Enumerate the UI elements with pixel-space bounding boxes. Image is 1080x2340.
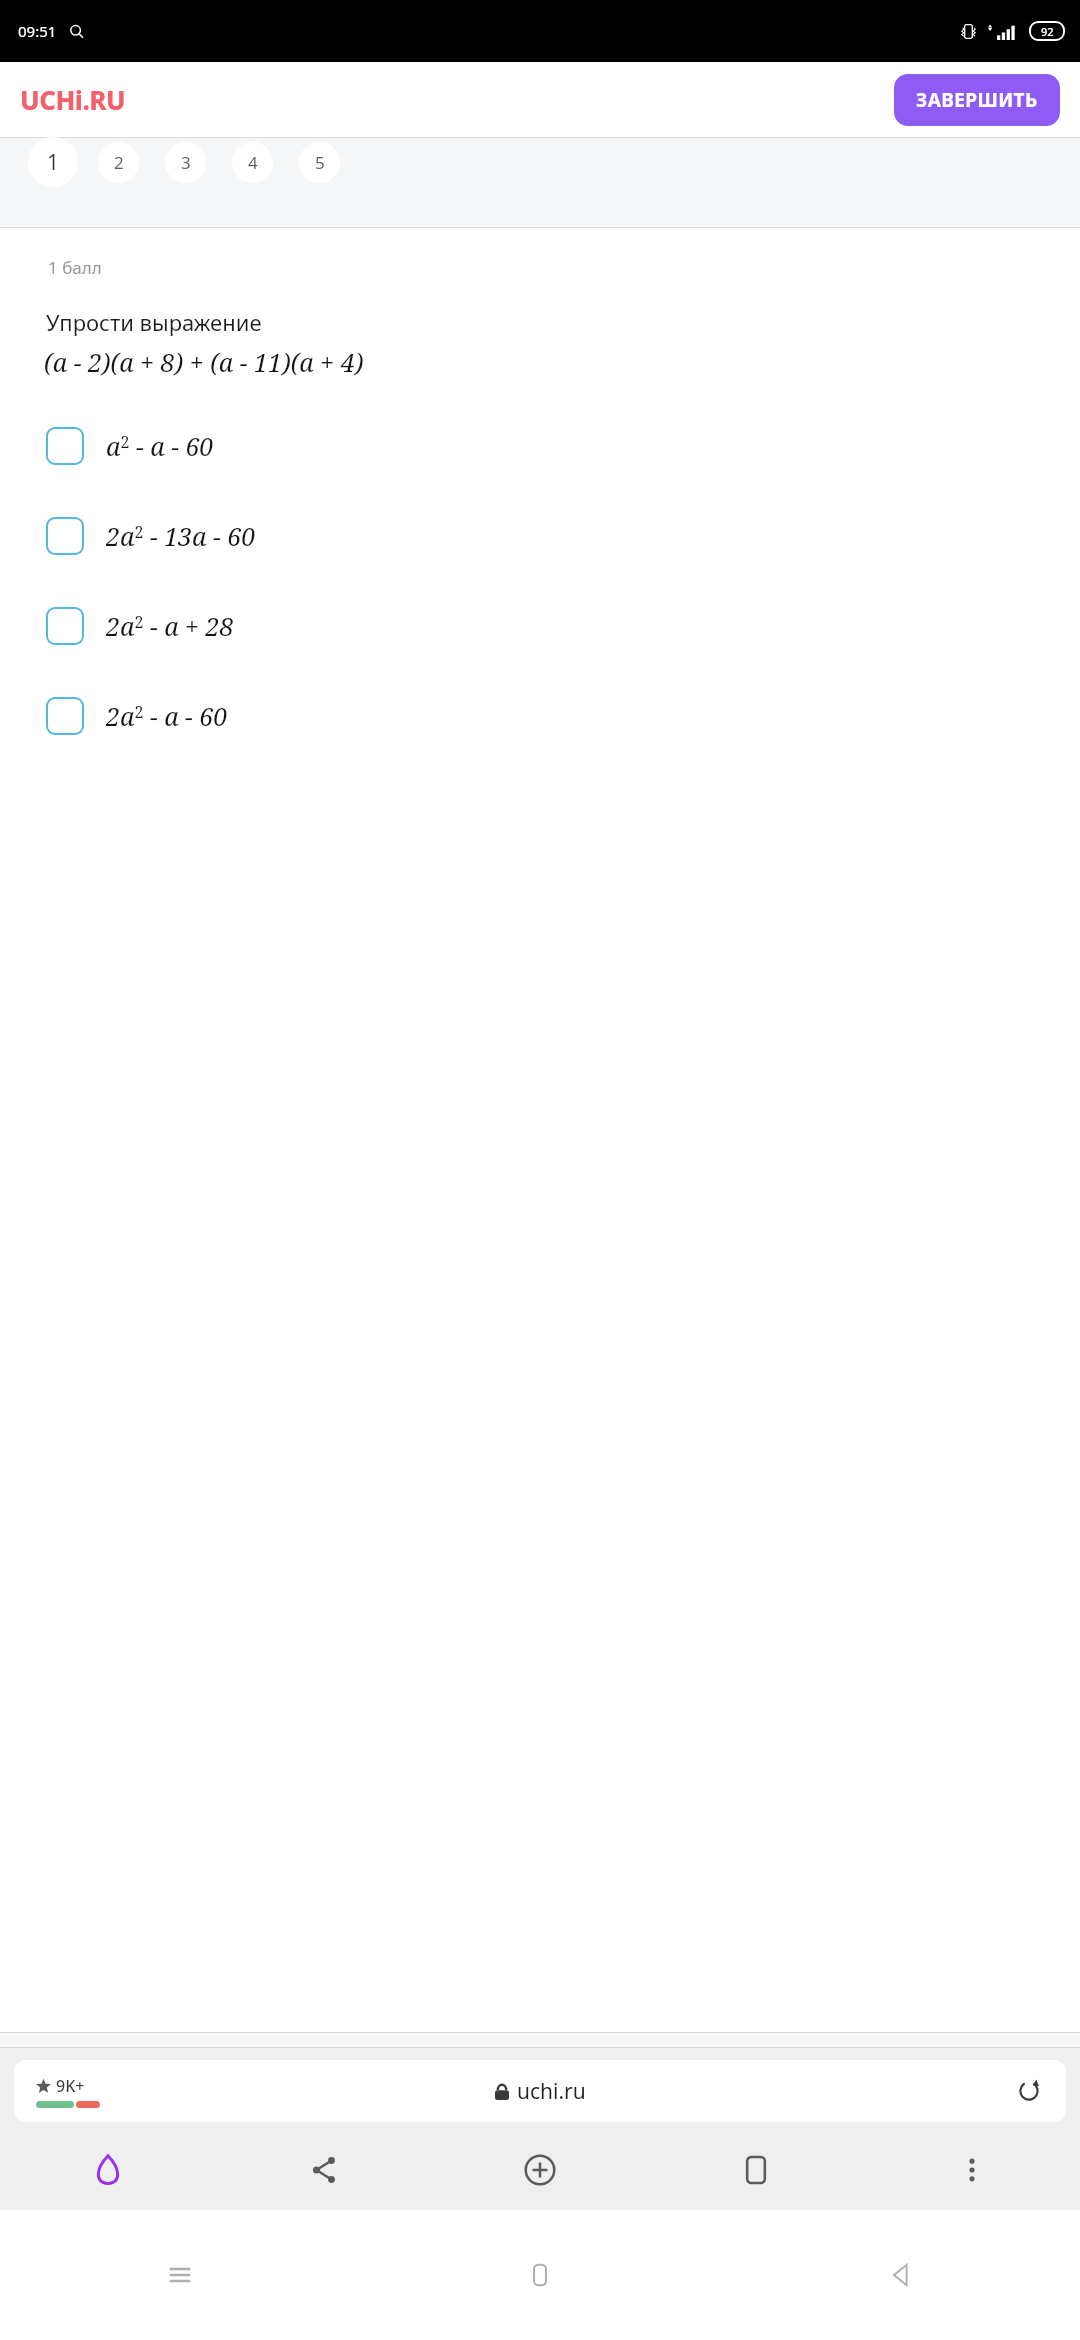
button[interactable]: Home [360, 2210, 720, 2340]
staticText: 4 [248, 151, 258, 174]
staticText: 1 [47, 148, 60, 177]
staticText: 09:51 [18, 21, 57, 41]
staticText: 92 [1041, 24, 1054, 39]
staticText: 2a2 − a − 60 [106, 699, 228, 733]
button[interactable]: 4 [232, 142, 273, 183]
button[interactable]: Back [720, 2210, 1080, 2340]
staticText: (a − 2)(a + 8) + (a − 11)(a + 4) [44, 345, 364, 379]
button[interactable]: Reload [1014, 2076, 1044, 2106]
button[interactable]: ЗАВЕРШИТЬ [894, 74, 1060, 126]
button[interactable]: Tabs: 14 [648, 2136, 864, 2204]
button[interactable]: Home [0, 2136, 216, 2204]
button[interactable]: New tab [432, 2136, 648, 2204]
staticText: 1 балл [48, 256, 102, 279]
staticText: uchi.ru [517, 2077, 586, 2106]
button[interactable]: UCHi.RU [20, 82, 126, 117]
staticText: ЗАВЕРШИТЬ [916, 87, 1038, 113]
button[interactable]: 2a2 − a − 60 [0, 691, 1080, 741]
button[interactable]: More options [864, 2136, 1080, 2204]
button[interactable]: 2 [98, 142, 139, 183]
staticText: 5 [315, 151, 325, 174]
button[interactable]: 3 [165, 142, 206, 183]
staticText: 2a2 − a + 28 [106, 609, 234, 643]
staticText: a2 − a − 60 [106, 429, 214, 463]
button[interactable]: Recents [0, 2210, 360, 2340]
button[interactable]: a2 − a − 60 [0, 421, 1080, 471]
staticText: 2 [114, 151, 124, 174]
button[interactable]: 5 [299, 142, 340, 183]
button[interactable]: 9K+ [14, 2060, 1066, 2122]
staticText: 9K+ [56, 2075, 85, 2097]
button[interactable]: 2a2 − a + 28 [0, 601, 1080, 651]
button[interactable]: 1 [28, 137, 78, 187]
button[interactable]: Share [216, 2136, 432, 2204]
staticText: 3 [181, 151, 191, 174]
staticText: 2a2 − 13a − 60 [106, 519, 256, 553]
staticText: Упрости выражение [46, 307, 262, 337]
button[interactable]: 2a2 − 13a − 60 [0, 511, 1080, 561]
